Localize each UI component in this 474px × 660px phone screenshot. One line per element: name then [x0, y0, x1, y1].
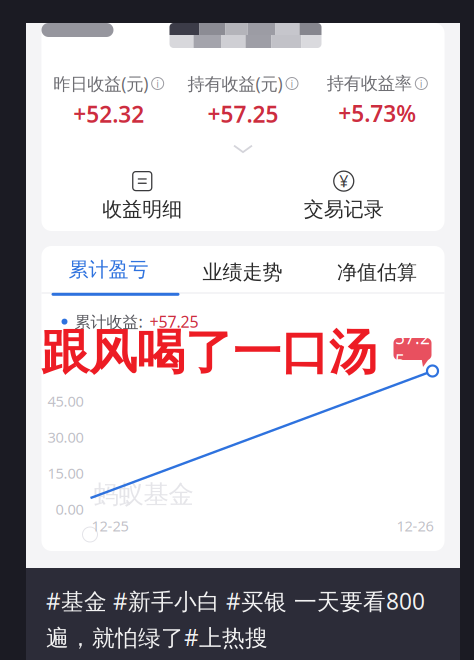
staticText: 跟风喝了一口汤 [41, 323, 377, 382]
staticText: 45.00 [47, 391, 83, 411]
staticText: 12-26 [396, 516, 433, 535]
staticText: 净值估算 [337, 260, 417, 285]
button[interactable]: 收益明细 [41, 170, 243, 222]
staticText: #基金 #新手小白 #买银 一天要看800遍，就怕绿了#上热搜 [46, 586, 425, 652]
staticText: 昨日收益(元) [53, 72, 148, 95]
staticText: 累计盈亏 [68, 257, 148, 282]
staticText: 0.00 [55, 499, 83, 519]
staticText: +57.25 [149, 311, 198, 332]
staticText: 收益明细 [102, 197, 182, 222]
button[interactable]: 展开 [213, 141, 273, 157]
staticText: +52.32 [73, 99, 144, 129]
staticText: 蚂蚁基金 [93, 479, 193, 510]
staticText: i [420, 76, 423, 91]
staticText: ¥ [339, 170, 348, 192]
staticText: 累计收益: [74, 311, 142, 332]
staticText: 15.00 [47, 463, 83, 483]
staticText: 57.25 [395, 326, 430, 372]
button[interactable]: 业绩走势 [175, 246, 309, 293]
button[interactable]: 累计盈亏 [41, 246, 175, 293]
staticText: +5.73% [338, 98, 416, 128]
staticText: 交易记录 [304, 197, 384, 222]
button[interactable]: ¥ [243, 170, 444, 222]
staticText: 30.00 [47, 427, 83, 447]
staticText: 持有收益(元) [187, 72, 282, 95]
staticText: 业绩走势 [202, 260, 282, 285]
button[interactable]: 净值估算 [309, 246, 444, 293]
staticText: 持有收益率 [327, 73, 412, 94]
staticText: i [290, 76, 293, 91]
staticText: +57.25 [207, 99, 278, 129]
staticText: 12-25 [91, 516, 128, 535]
staticText: i [156, 76, 159, 91]
